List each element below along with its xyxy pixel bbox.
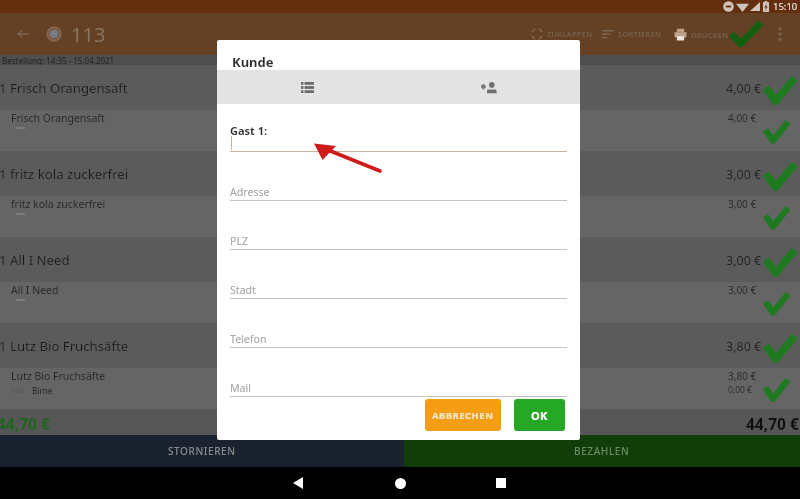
staticText: ABBRECHEN xyxy=(432,409,494,422)
button[interactable]: DRUCKEN xyxy=(672,23,731,46)
button[interactable]: All I Need xyxy=(0,282,800,323)
staticText: Mail xyxy=(230,381,252,395)
button[interactable]: 1 Lutz Bio Fruchsäfte xyxy=(0,323,800,368)
staticText: Bestellung: 14:35 - 15.04.2021 xyxy=(2,55,115,65)
button[interactable]: Frisch Orangensaft xyxy=(0,110,800,151)
staticText: 1 Lutz Bio Fruchsäfte xyxy=(0,337,129,355)
button[interactable]: BEZAHLEN xyxy=(404,435,800,467)
staticText: Frisch Orangensaft xyxy=(11,111,105,125)
button[interactable]: More options xyxy=(769,23,791,45)
staticText: SORTIEREN xyxy=(618,29,662,39)
staticText: 4,00 € xyxy=(726,80,762,97)
staticText: Lutz Bio Fruchsäfte xyxy=(11,369,106,383)
staticText: Kunde xyxy=(232,53,274,71)
staticText: fritz kola zuckerfrei xyxy=(11,197,106,211)
button[interactable]: Home xyxy=(385,468,415,498)
staticText: 44,70 € xyxy=(746,413,799,434)
button[interactable]: 1 fritz kola zuckerfrei xyxy=(0,151,800,196)
staticText: 3,00 € xyxy=(726,166,762,183)
staticText: OK xyxy=(531,408,548,423)
staticText: Stadt xyxy=(230,283,256,297)
staticText: 3,00 € xyxy=(728,197,757,211)
button[interactable]: 1 All I Need xyxy=(0,237,800,282)
button[interactable]: STORNIEREN xyxy=(0,435,404,467)
button[interactable]: Back xyxy=(283,468,313,498)
button[interactable]: Customer list xyxy=(217,70,398,104)
staticText: 0,00 € xyxy=(728,384,752,396)
button[interactable]: Recent apps xyxy=(486,468,516,498)
staticText: Adresse xyxy=(230,185,270,199)
staticText: 3,00 € xyxy=(726,252,762,269)
staticText: 3,80 € xyxy=(726,338,762,355)
staticText: 4,00 € xyxy=(728,111,757,125)
staticText: Telefon xyxy=(230,332,267,346)
button[interactable]: ZUKLAPPEN xyxy=(529,23,595,45)
staticText: 1 Frisch Orangensaft xyxy=(0,79,128,97)
staticText: 3,00 € xyxy=(728,283,757,297)
button[interactable]: SORTIEREN xyxy=(600,24,664,44)
staticText: 1 All I Need xyxy=(0,251,70,269)
staticText: 15:10 xyxy=(773,0,798,13)
staticText: Birne xyxy=(32,385,53,396)
button[interactable]: Lutz Bio Fruchsäfte xyxy=(0,368,800,409)
staticText: 113 xyxy=(71,21,106,48)
staticText: 3,80 € xyxy=(728,369,757,383)
staticText: DRUCKEN xyxy=(691,30,729,40)
staticText: ZUKLAPPEN xyxy=(547,29,593,39)
button[interactable]: 1 Frisch Orangensaft xyxy=(0,65,800,110)
staticText: All I Need xyxy=(11,283,59,297)
button[interactable]: Add customer xyxy=(398,70,580,104)
staticText: BEZAHLEN xyxy=(574,444,630,458)
staticText: 1 fritz kola zuckerfrei xyxy=(0,165,129,183)
staticText: Gast 1: xyxy=(230,123,268,138)
button[interactable]: Back xyxy=(9,21,35,47)
staticText: PLZ xyxy=(230,234,249,248)
staticText: STORNIEREN xyxy=(168,444,236,458)
staticText: 44,70 € xyxy=(0,413,50,434)
staticText: Inkl. xyxy=(11,386,26,396)
button[interactable]: OK xyxy=(514,399,565,431)
button[interactable]: fritz kola zuckerfrei xyxy=(0,196,800,237)
button[interactable]: Confirm order xyxy=(729,19,763,49)
button[interactable]: ABBRECHEN xyxy=(425,399,501,431)
